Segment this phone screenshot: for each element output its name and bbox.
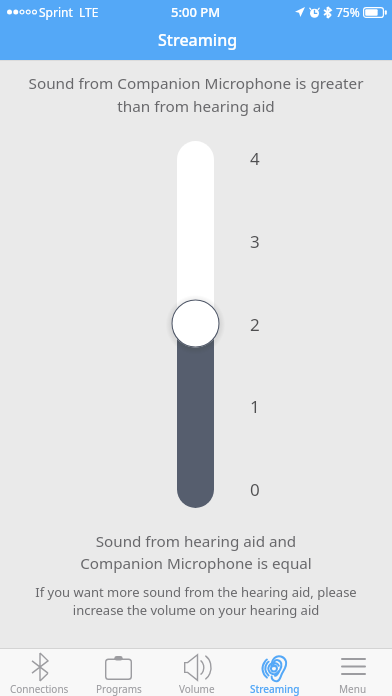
button[interactable]: Connections [0, 649, 79, 696]
button[interactable]: Volume [158, 649, 236, 696]
staticText: 5:00 PM [171, 3, 221, 21]
staticText: 0 [250, 478, 260, 501]
staticText: 75% [336, 4, 360, 20]
staticText: 4 [250, 147, 260, 170]
staticText: LTE [79, 4, 99, 20]
staticText: Streaming [250, 682, 300, 696]
staticText: Sound from hearing aid and Companion Mic… [0, 531, 392, 573]
button[interactable]: Balance slider [177, 141, 214, 508]
staticText: Menu [339, 682, 367, 696]
staticText: 2 [250, 313, 260, 336]
staticText: Programs [96, 682, 142, 696]
staticText: 1 [250, 395, 260, 418]
button[interactable]: Programs [79, 649, 158, 696]
staticText: 3 [250, 230, 260, 253]
staticText: Streaming [158, 29, 238, 51]
staticText: Connections [10, 682, 69, 696]
button[interactable]: Menu [314, 649, 392, 696]
staticText: If you want more sound from the hearing … [0, 583, 392, 619]
staticText: Volume [179, 682, 215, 696]
staticText: Sound from Companion Microphone is great… [0, 73, 392, 116]
staticText: Sprint [39, 4, 73, 20]
button[interactable]: Streaming [236, 649, 314, 696]
